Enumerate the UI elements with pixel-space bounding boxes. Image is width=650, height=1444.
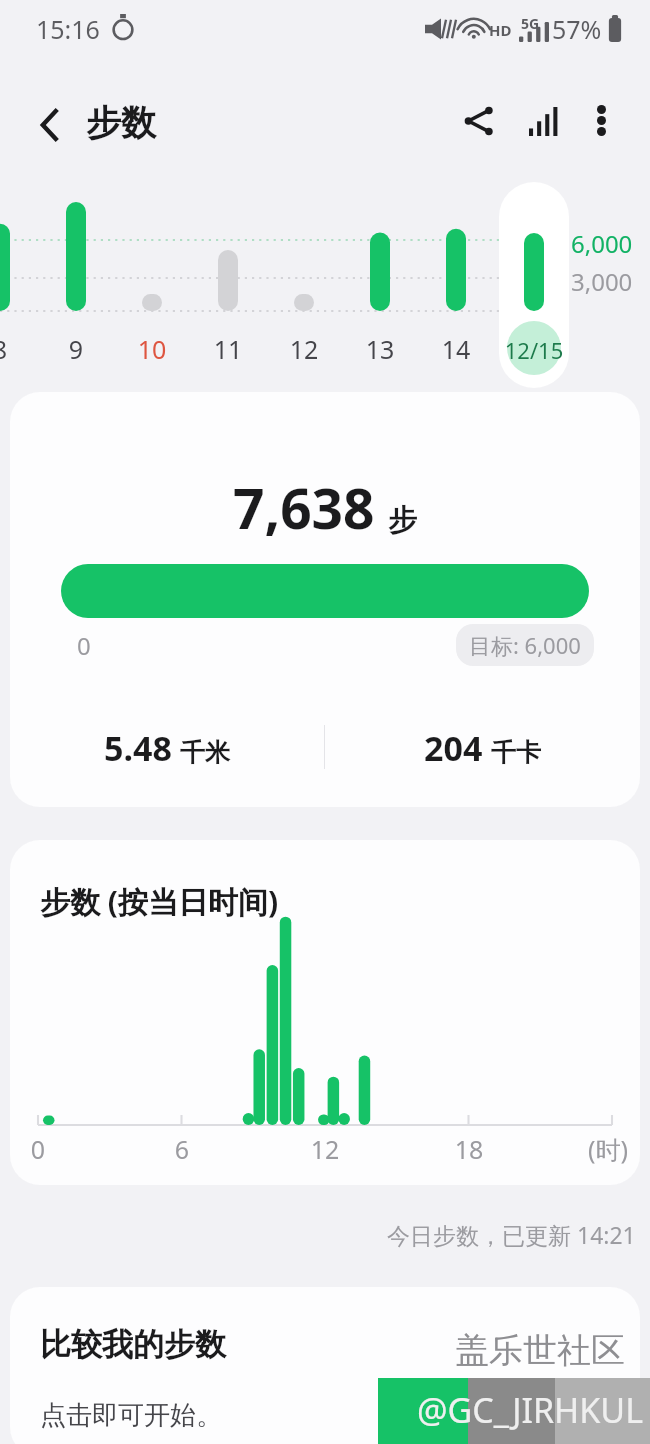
staticText: 12/15 [494,335,574,365]
staticText: 10 [126,332,178,366]
staticText: 13 [354,332,406,366]
staticText: 18 [429,1132,509,1166]
staticText: 0 [10,1132,78,1166]
staticText: 12 [278,332,330,366]
staticText: 5G [521,14,540,33]
button[interactable]: 目标: 6,000 [469,630,581,660]
button[interactable]: 5.48 [10,717,324,779]
staticText: 204 [424,725,483,771]
staticText: 15:16 [36,12,100,46]
staticText: 9 [50,332,102,366]
staticText: 11 [202,332,254,366]
staticText: 6,000 [571,227,633,260]
button[interactable]: 12/15 [494,335,574,365]
staticText: (时) [568,1132,640,1166]
button[interactable]: 204 [325,717,640,779]
staticText: 盖乐世社区 [455,1329,625,1372]
staticText: 步数 [86,101,156,145]
button[interactable]: More options [570,89,632,151]
staticText: 今日步数，已更新 14:21 [387,1219,636,1250]
button[interactable]: 比较我的步数 [10,1287,640,1444]
button[interactable]: 步数 (按当日时间) [10,840,640,1185]
staticText: @GC_JIRHKUL [417,1387,643,1433]
staticText: 3,000 [571,265,633,298]
staticText: 千米 [180,737,230,768]
button[interactable]: Back [16,91,84,159]
staticText: 8 [0,332,26,366]
staticText: 步 [388,502,417,539]
staticText: 比较我的步数 [40,1325,226,1364]
staticText: 0 [77,629,91,662]
staticText: 6 [142,1132,222,1166]
button[interactable]: 7,638 [10,392,640,807]
staticText: 57% [552,12,602,46]
button[interactable]: Trends [511,89,575,153]
staticText: 5.48 [104,725,172,771]
staticText: 千卡 [491,737,541,768]
staticText: 目标: 6,000 [469,630,581,660]
staticText: 7,638 [233,470,375,545]
button[interactable]: Share [447,89,511,153]
staticText: 点击即可开始。 [40,1399,222,1432]
staticText: 步数 (按当日时间) [40,881,279,922]
staticText: HD [489,20,512,40]
staticText: 12 [285,1132,365,1166]
staticText: 14 [430,332,482,366]
